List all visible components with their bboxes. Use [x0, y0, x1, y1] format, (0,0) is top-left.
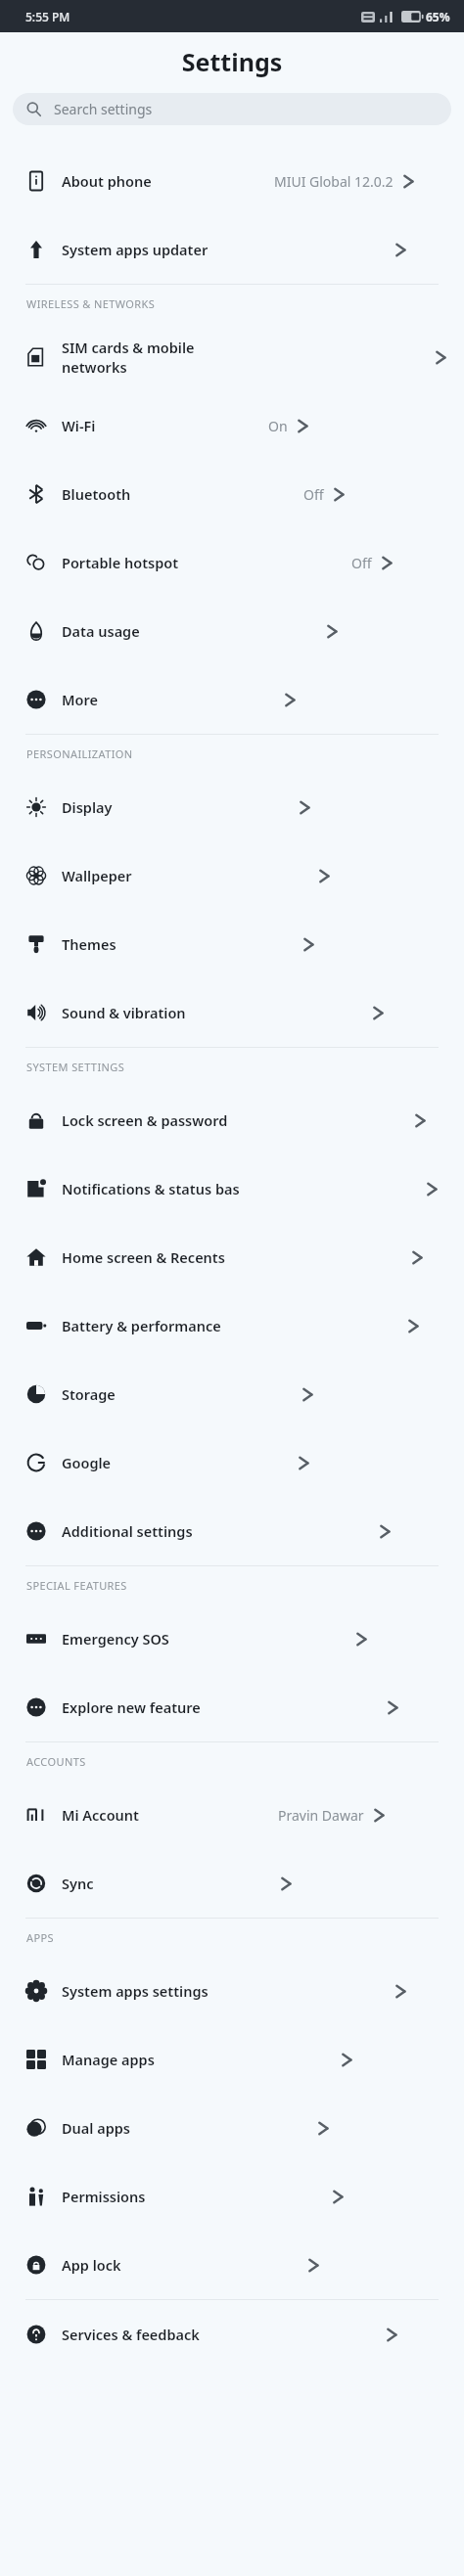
button[interactable]: Wallpaper: [0, 841, 464, 910]
button[interactable]: System apps updater: [0, 215, 464, 284]
button[interactable]: Bluetooth: [0, 460, 464, 528]
staticText: Portable hotspot: [62, 553, 179, 572]
button[interactable]: About phone: [0, 147, 464, 215]
button[interactable]: Display: [0, 773, 464, 841]
button[interactable]: Permissions: [0, 2162, 464, 2231]
staticText: Battery & performance: [62, 1316, 221, 1335]
button[interactable]: Explore new feature: [0, 1673, 464, 1741]
button[interactable]: Storage: [0, 1360, 464, 1428]
staticText: System apps settings: [62, 1981, 209, 2001]
button[interactable]: SIM cards: [0, 323, 464, 391]
button[interactable]: Sound: [0, 978, 464, 1047]
staticText: Data usage: [62, 621, 140, 641]
button[interactable]: Wi-Fi: [0, 391, 464, 460]
staticText: Notifications & status bas: [62, 1179, 240, 1198]
staticText: 5:55 PM: [25, 9, 70, 24]
staticText: Pravin Dawar: [278, 1806, 364, 1825]
staticText: Display: [62, 797, 113, 817]
button[interactable]: More: [0, 665, 464, 734]
staticText: Off: [303, 485, 324, 504]
staticText: Sound & vibration: [62, 1003, 186, 1022]
staticText: SPECIAL FEATURES: [26, 1578, 127, 1593]
staticText: Sync: [62, 1874, 94, 1893]
staticText: System apps updater: [62, 240, 209, 259]
staticText: Manage apps: [62, 2050, 155, 2069]
button[interactable]: Themes: [0, 910, 464, 978]
staticText: On: [268, 417, 288, 435]
staticText: Additional settings: [62, 1521, 193, 1541]
staticText: Explore new feature: [62, 1697, 201, 1717]
button[interactable]: Services and feedback: [0, 2300, 464, 2369]
button[interactable]: App lock: [0, 2231, 464, 2299]
staticText: Off: [351, 554, 372, 572]
staticText: ACCOUNTS: [26, 1754, 86, 1769]
button[interactable]: Home screen: [0, 1223, 464, 1291]
staticText: PERSONAILIZATION: [26, 746, 133, 761]
staticText: About phone: [62, 171, 152, 191]
staticText: Google: [62, 1453, 112, 1472]
staticText: Emergency SOS: [62, 1629, 169, 1649]
button[interactable]: Dual apps: [0, 2094, 464, 2162]
button[interactable]: Google: [0, 1428, 464, 1497]
staticText: SYSTEM SETTINGS: [26, 1060, 125, 1074]
button[interactable]: Manage apps: [0, 2025, 464, 2094]
staticText: Services & feedback: [62, 2325, 200, 2344]
staticText: 65%: [426, 9, 450, 24]
staticText: More: [62, 690, 98, 709]
button[interactable]: Sync: [0, 1849, 464, 1918]
staticText: Home screen & Recents: [62, 1247, 225, 1267]
button[interactable]: Additional settings: [0, 1497, 464, 1565]
button[interactable]: System apps settings: [0, 1957, 464, 2025]
button[interactable]: Search settings: [13, 93, 451, 125]
staticText: Storage: [62, 1384, 116, 1404]
staticText: Dual apps: [62, 2118, 131, 2138]
button[interactable]: Notifications: [0, 1154, 464, 1223]
staticText: Wallpeper: [62, 866, 132, 885]
staticText: Mi Account: [62, 1805, 139, 1825]
button[interactable]: Emergency SOS: [0, 1604, 464, 1673]
staticText: MIUI Global 12.0.2: [274, 172, 394, 191]
staticText: Settings: [0, 45, 464, 78]
staticText: SIM cards & mobile networks: [62, 338, 249, 377]
staticText: Permissions: [62, 2187, 146, 2206]
staticText: APPS: [26, 1930, 54, 1945]
button[interactable]: Data usage: [0, 597, 464, 665]
button[interactable]: Mi Account: [0, 1781, 464, 1849]
button[interactable]: Battery: [0, 1291, 464, 1360]
button[interactable]: Hotspot: [0, 528, 464, 597]
staticText: Bluetooth: [62, 484, 131, 504]
staticText: App lock: [62, 2255, 121, 2275]
staticText: Themes: [62, 934, 116, 954]
staticText: Search settings: [54, 100, 153, 118]
staticText: Wi-Fi: [62, 416, 96, 435]
staticText: WIRELESS & NETWORKS: [26, 296, 156, 311]
staticText: Lock screen & password: [62, 1110, 228, 1130]
button[interactable]: Lock screen: [0, 1086, 464, 1154]
